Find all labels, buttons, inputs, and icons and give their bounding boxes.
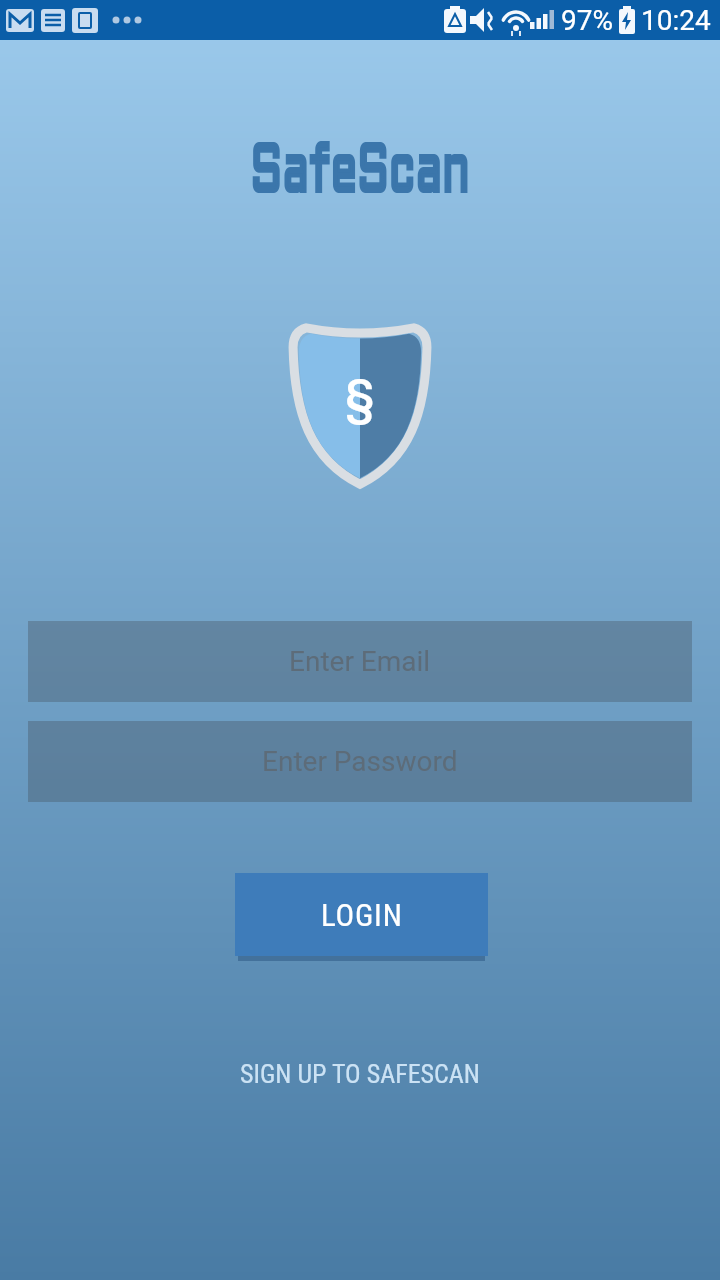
staticText: §	[345, 368, 375, 424]
staticText: SafeScan	[250, 143, 469, 205]
staticText: SIGN UP TO SAFESCAN	[240, 1059, 480, 1089]
button[interactable]: Enter Password	[28, 721, 692, 802]
button[interactable]: SIGN UP TO SAFESCAN	[240, 1059, 480, 1089]
staticText: Enter Email	[289, 645, 431, 678]
staticText: SafeScan	[250, 143, 469, 205]
button[interactable]: Enter Email	[28, 621, 692, 702]
staticText: 97%	[561, 4, 613, 37]
staticText: LOGIN	[321, 897, 403, 933]
button[interactable]: LOGIN	[235, 873, 488, 956]
staticText: 10:24	[641, 4, 711, 37]
staticText: Enter Password	[262, 745, 458, 778]
